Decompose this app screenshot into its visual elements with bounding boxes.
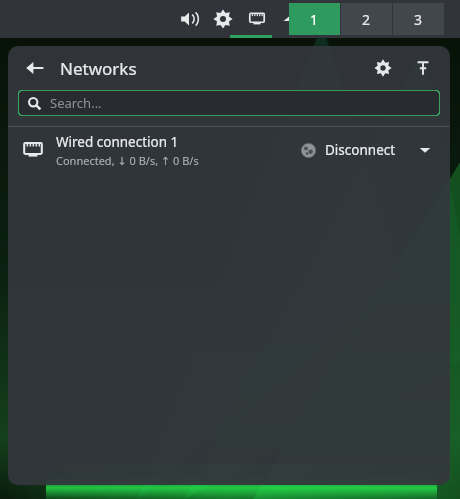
button[interactable]: Display brightness — [210, 4, 236, 34]
staticText: Networks — [60, 57, 137, 80]
staticText: Wired connection 1 — [56, 133, 179, 151]
button[interactable]: Wired connection 1 — [8, 127, 450, 173]
staticText: Search... — [50, 94, 102, 112]
button[interactable]: Search... — [18, 90, 440, 116]
button[interactable]: Back — [22, 55, 48, 81]
staticText: Disconnect — [325, 141, 396, 159]
staticText: 1 — [310, 10, 319, 29]
button[interactable]: Settings — [370, 55, 396, 81]
button[interactable]: 2 — [341, 3, 392, 35]
staticText: 2 — [362, 10, 371, 29]
button[interactable]: Pin — [410, 55, 436, 81]
button[interactable]: Network — [244, 4, 270, 34]
button[interactable]: Volume — [176, 4, 202, 34]
button[interactable]: Show hidden icons — [276, 4, 302, 34]
button[interactable]: 1 — [289, 3, 340, 35]
button[interactable]: Disconnect — [297, 137, 400, 163]
staticText: 3 — [414, 10, 423, 29]
button[interactable]: 3 — [393, 3, 444, 35]
button[interactable]: More options — [414, 139, 436, 161]
staticText: Connected, ↓ 0 B/s, ↑ 0 B/s — [56, 153, 199, 168]
